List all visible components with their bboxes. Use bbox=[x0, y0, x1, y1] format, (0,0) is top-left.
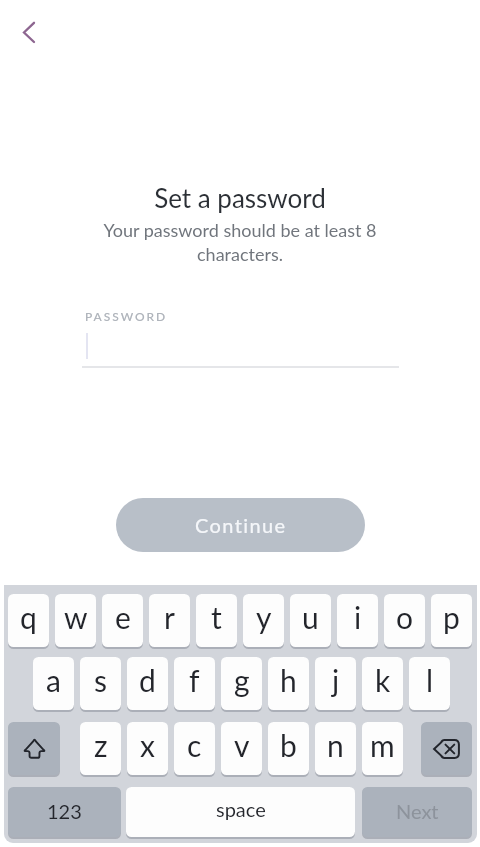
button[interactable]: o bbox=[384, 594, 425, 647]
button[interactable]: c bbox=[174, 722, 215, 775]
staticText: space bbox=[216, 797, 266, 821]
button[interactable]: Continue bbox=[116, 498, 365, 552]
button[interactable]: z bbox=[80, 722, 121, 775]
button[interactable]: Next bbox=[362, 787, 472, 837]
button[interactable]: k bbox=[362, 657, 403, 710]
button[interactable]: d bbox=[127, 657, 168, 710]
staticText: x bbox=[140, 727, 155, 763]
staticText: o bbox=[396, 599, 414, 635]
staticText: p bbox=[443, 599, 460, 635]
button[interactable]: u bbox=[290, 594, 331, 647]
staticText: q bbox=[20, 599, 37, 635]
staticText: Continue bbox=[195, 513, 287, 537]
button[interactable]: b bbox=[268, 722, 309, 775]
button[interactable]: f bbox=[174, 657, 215, 710]
button[interactable]: l bbox=[409, 657, 450, 710]
button[interactable] bbox=[82, 332, 399, 368]
staticText: u bbox=[302, 599, 319, 635]
staticText: d bbox=[139, 662, 156, 698]
staticText: c bbox=[187, 727, 202, 763]
button[interactable]: t bbox=[196, 594, 237, 647]
button[interactable]: x bbox=[127, 722, 168, 775]
staticText: Set a password bbox=[154, 182, 326, 213]
staticText: r bbox=[164, 599, 175, 635]
button[interactable]: Back bbox=[8, 11, 52, 55]
staticText: Your password should be at least 8 chara… bbox=[92, 219, 388, 265]
button[interactable]: space bbox=[126, 787, 355, 837]
button[interactable]: q bbox=[8, 594, 49, 647]
staticText: b bbox=[280, 727, 297, 763]
staticText: m bbox=[370, 727, 395, 763]
staticText: e bbox=[115, 599, 131, 635]
staticText: h bbox=[280, 662, 297, 698]
button[interactable]: p bbox=[431, 594, 472, 647]
button[interactable]: w bbox=[55, 594, 96, 647]
staticText: z bbox=[94, 727, 108, 763]
button[interactable]: v bbox=[221, 722, 262, 775]
staticText: s bbox=[94, 662, 107, 698]
staticText: j bbox=[332, 662, 340, 698]
staticText: y bbox=[256, 599, 272, 635]
staticText: l bbox=[426, 662, 434, 698]
button[interactable]: m bbox=[362, 722, 403, 775]
button[interactable]: e bbox=[102, 594, 143, 647]
staticText: v bbox=[234, 727, 250, 763]
button[interactable]: i bbox=[337, 594, 378, 647]
staticText: k bbox=[375, 662, 391, 698]
button[interactable]: Backspace bbox=[421, 722, 472, 775]
button[interactable]: n bbox=[315, 722, 356, 775]
staticText: g bbox=[234, 662, 250, 698]
button[interactable]: 123 bbox=[8, 787, 121, 837]
button[interactable]: j bbox=[315, 657, 356, 710]
button[interactable]: s bbox=[80, 657, 121, 710]
staticText: PASSWORD bbox=[85, 309, 168, 323]
staticText: 123 bbox=[47, 799, 82, 823]
button[interactable]: a bbox=[33, 657, 74, 710]
button[interactable]: y bbox=[243, 594, 284, 647]
staticText: w bbox=[64, 599, 88, 635]
staticText: Next bbox=[396, 799, 439, 823]
staticText: i bbox=[354, 599, 362, 635]
staticText: a bbox=[46, 662, 61, 698]
button[interactable]: h bbox=[268, 657, 309, 710]
button[interactable]: g bbox=[221, 657, 262, 710]
staticText: n bbox=[327, 727, 344, 763]
button[interactable]: r bbox=[149, 594, 190, 647]
staticText: t bbox=[211, 599, 222, 635]
button[interactable]: Shift bbox=[8, 722, 60, 775]
staticText: f bbox=[189, 662, 200, 698]
